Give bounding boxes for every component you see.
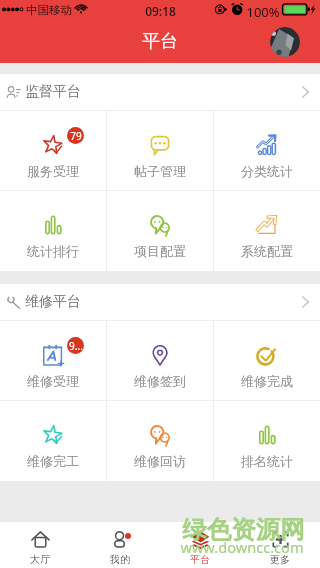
button[interactable]: 维修完工 bbox=[0, 401, 106, 481]
staticText: 分类统计 bbox=[241, 163, 293, 179]
staticText: 维修签到 bbox=[134, 373, 186, 389]
button[interactable]: 帖子管理 bbox=[107, 111, 213, 190]
button[interactable]: 系统配置 bbox=[214, 191, 320, 271]
button[interactable]: 项目配置 bbox=[107, 191, 213, 271]
staticText: 维修回访 bbox=[134, 453, 186, 469]
staticText: 统计排行 bbox=[27, 243, 79, 259]
staticText: 平台 bbox=[142, 30, 178, 53]
staticText: www.downcc.com bbox=[180, 537, 304, 557]
staticText: 79 bbox=[70, 129, 82, 143]
staticText: 帖子管理 bbox=[134, 163, 186, 179]
staticText: 排名统计 bbox=[241, 453, 293, 469]
staticText: 平台 bbox=[190, 553, 210, 566]
staticText: 100% bbox=[246, 3, 280, 21]
button[interactable]: 统计排行 bbox=[0, 191, 106, 271]
staticText: 系统配置 bbox=[241, 243, 293, 259]
button[interactable]: 更多 bbox=[240, 522, 320, 568]
button[interactable]: 我的 bbox=[80, 522, 160, 568]
button[interactable]: 排名统计 bbox=[214, 401, 320, 481]
staticText: 中国移动 bbox=[26, 3, 72, 17]
staticText: 09:18 bbox=[145, 3, 176, 19]
staticText: 维修受理 bbox=[27, 373, 79, 389]
button[interactable]: 维修受理 bbox=[0, 321, 106, 400]
button[interactable]: 维修回访 bbox=[107, 401, 213, 481]
button[interactable]: 大厅 bbox=[0, 522, 80, 568]
button[interactable]: 维修签到 bbox=[107, 321, 213, 400]
button[interactable]: 分类统计 bbox=[214, 111, 320, 190]
staticText: 9... bbox=[69, 339, 83, 353]
staticText: 绿色资源网 bbox=[182, 514, 305, 545]
staticText: 维修完成 bbox=[241, 373, 293, 389]
staticText: 监督平台 bbox=[25, 83, 81, 101]
staticText: 项目配置 bbox=[134, 243, 186, 259]
staticText: 维修平台 bbox=[25, 293, 81, 311]
button[interactable]: 平台 bbox=[160, 522, 240, 568]
button[interactable]: 监督平台 bbox=[0, 74, 320, 110]
staticText: 更多 bbox=[270, 553, 290, 566]
button[interactable]: Profile bbox=[270, 27, 300, 57]
button[interactable]: 维修平台 bbox=[0, 284, 320, 320]
staticText: 我的 bbox=[110, 553, 130, 566]
staticText: 维修完工 bbox=[27, 453, 79, 469]
staticText: 服务受理 bbox=[27, 163, 79, 179]
button[interactable]: 服务受理 bbox=[0, 111, 106, 190]
staticText: 大厅 bbox=[30, 553, 50, 566]
button[interactable]: 维修完成 bbox=[214, 321, 320, 400]
